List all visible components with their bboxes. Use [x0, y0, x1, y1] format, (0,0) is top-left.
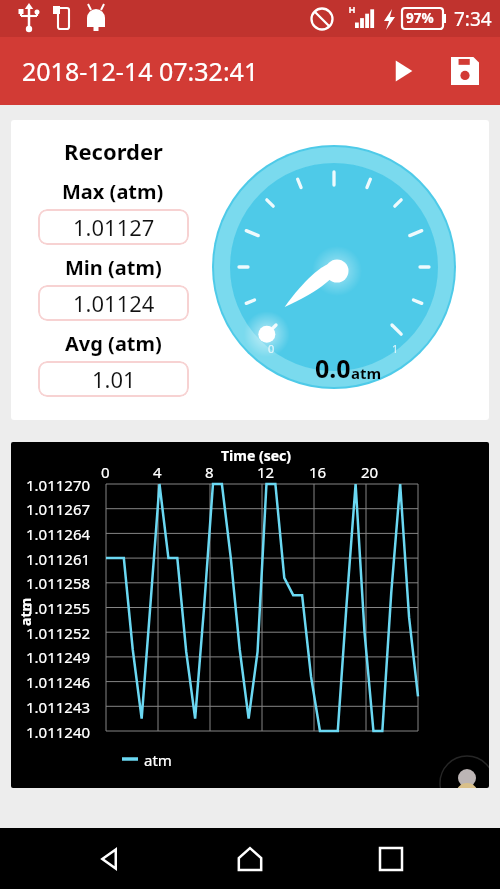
staticText: 1.01 [92, 364, 136, 394]
staticText: 0.0 [315, 351, 351, 385]
staticText: 1.01124 [73, 288, 155, 318]
staticText: 7:34 [454, 6, 492, 32]
staticText: 1.011270 [26, 475, 91, 495]
staticText: 12 [257, 462, 275, 482]
button[interactable]: 1.01127 [38, 209, 189, 245]
button[interactable]: Save [438, 44, 492, 98]
staticText: 1.01127 [73, 212, 155, 242]
button[interactable]: 1.01124 [38, 285, 189, 321]
staticText: 1.011249 [26, 647, 91, 667]
staticText: 1.011246 [26, 672, 91, 692]
staticText: 1.011267 [26, 499, 91, 519]
staticText: 1.011264 [26, 524, 91, 544]
staticText: atm [351, 363, 382, 383]
staticText: 1.011243 [26, 697, 91, 717]
staticText: Avg (atm) [65, 330, 162, 357]
staticText: 1.011258 [26, 573, 91, 593]
staticText: 1.011240 [26, 722, 91, 742]
button[interactable]: Play [376, 44, 430, 98]
staticText: 8 [205, 462, 214, 482]
staticText: Max (atm) [62, 178, 164, 205]
staticText: Time (sec) [221, 446, 292, 465]
staticText: 2018-12-14 07:32:41 [22, 54, 259, 88]
staticText: 1.011252 [26, 623, 91, 643]
button[interactable]: Recent apps [360, 828, 422, 889]
staticText: 0 [268, 341, 275, 356]
staticText: 4 [153, 462, 162, 482]
button[interactable]: Back [79, 828, 141, 889]
staticText: Recorder [64, 136, 163, 166]
staticText: atm [16, 597, 35, 626]
staticText: 1.011261 [26, 549, 91, 569]
button[interactable]: Home [219, 828, 281, 889]
staticText: 97% [406, 9, 434, 27]
staticText: 20 [361, 462, 379, 482]
staticText: 0 [101, 462, 110, 482]
button[interactable]: 1.01 [38, 361, 189, 397]
staticText: Min (atm) [65, 254, 162, 281]
staticText: atm [144, 750, 172, 770]
staticText: 1 [392, 341, 399, 356]
staticText: 16 [309, 462, 327, 482]
staticText: 1.011255 [26, 598, 91, 618]
